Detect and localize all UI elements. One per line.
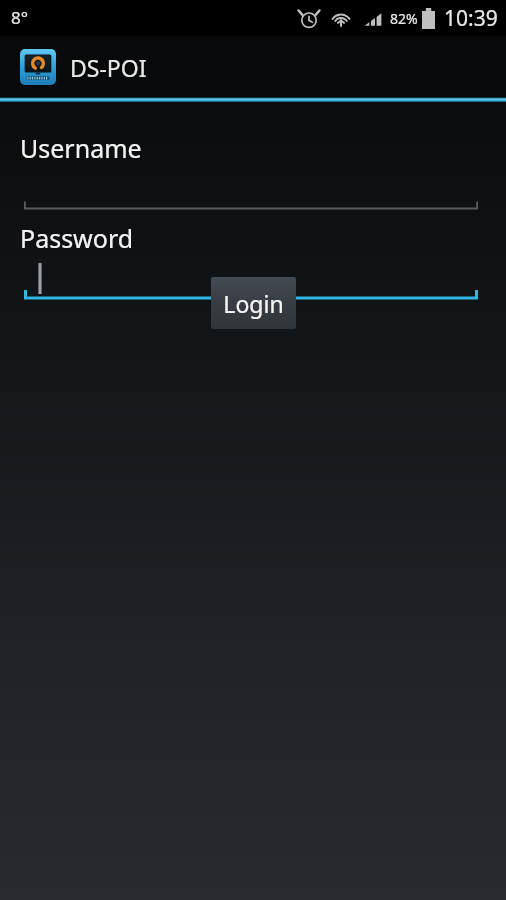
staticText: Login	[223, 288, 284, 319]
staticText: 82%	[390, 9, 418, 28]
staticText: Username	[20, 131, 142, 165]
button[interactable]: Login	[211, 277, 296, 329]
button[interactable]	[24, 174, 478, 210]
staticText: DS-POI	[70, 52, 147, 83]
button[interactable]: DS-POI	[0, 43, 159, 91]
button[interactable]: Password field	[24, 258, 478, 300]
staticText: Password	[20, 221, 134, 255]
staticText: 10:39	[444, 4, 498, 33]
staticText: 8°	[11, 6, 28, 29]
